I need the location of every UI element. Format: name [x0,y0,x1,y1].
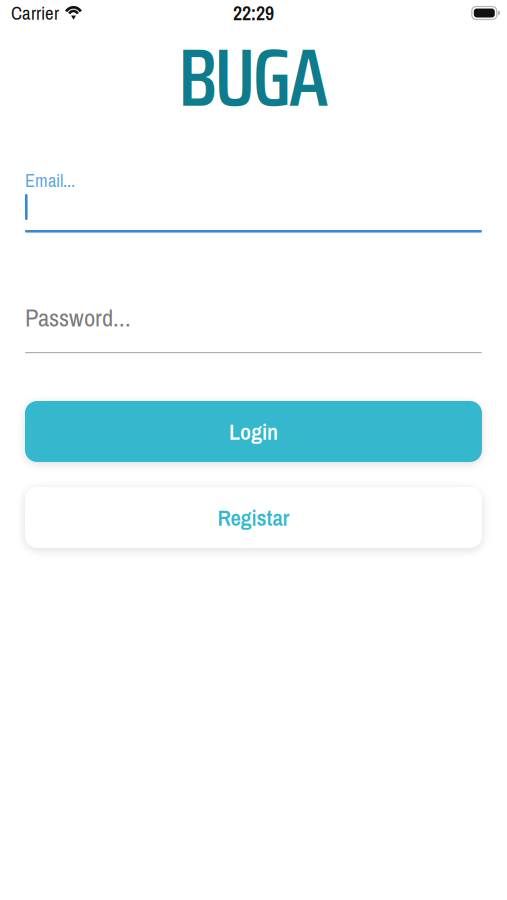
staticText: Email... [25,168,75,193]
button[interactable]: Registar [25,487,482,548]
staticText: BUGA [178,15,329,141]
staticText: Carrier [11,0,59,25]
staticText: 22:29 [233,0,274,26]
staticText: Registar [217,502,289,533]
staticText: Password... [25,301,131,334]
button[interactable]: Login [25,401,482,462]
staticText: Login [229,416,278,447]
